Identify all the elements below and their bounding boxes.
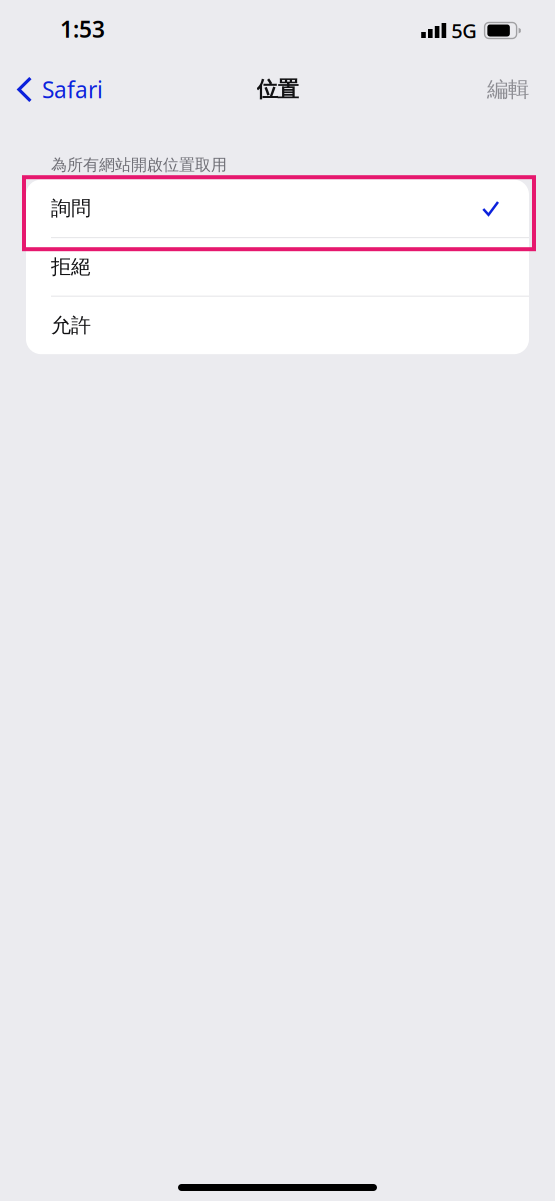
button[interactable]: 詢問 <box>26 180 529 237</box>
button[interactable]: 允許 <box>26 297 529 354</box>
staticText: 位置 <box>256 76 298 103</box>
staticText: 編輯 <box>487 76 529 103</box>
staticText: 允許 <box>51 313 91 338</box>
staticText: 詢問 <box>51 196 91 221</box>
staticText: 1:53 <box>60 14 105 44</box>
button[interactable]: Safari <box>0 58 115 121</box>
button[interactable]: 拒絕 <box>26 238 529 296</box>
staticText: 拒絕 <box>51 255 91 279</box>
staticText: 為所有網站開啟位置取用 <box>51 155 227 175</box>
button[interactable]: 編輯 <box>473 58 555 121</box>
staticText: 5G <box>451 17 477 44</box>
staticText: Safari <box>42 74 103 104</box>
